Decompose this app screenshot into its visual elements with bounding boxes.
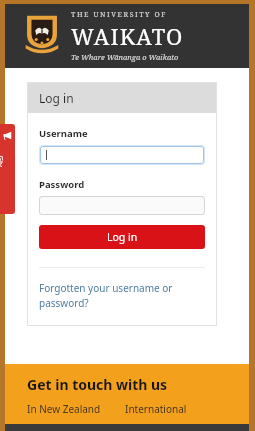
staticText: WAIKATO	[71, 21, 184, 51]
staticText: Log in	[107, 230, 138, 244]
button[interactable]: Log in	[39, 225, 205, 249]
button[interactable]: International	[125, 402, 187, 416]
button[interactable]: In New Zealand	[27, 402, 101, 416]
staticText: Password	[39, 178, 85, 191]
staticText: International	[125, 402, 187, 416]
staticText: In New Zealand	[27, 402, 101, 416]
staticText: Log in	[39, 90, 74, 106]
staticText: Get in touch with us	[27, 375, 168, 394]
staticText: Te Whare Wānanga o Waikato	[71, 52, 179, 62]
staticText: Give Feedback	[0, 155, 5, 170]
staticText: Forgotten your username or password?	[39, 281, 205, 310]
button[interactable]: Forgotten your username or password?	[39, 281, 205, 310]
button[interactable]: Give Feedback	[0, 124, 15, 214]
staticText: Username	[39, 127, 88, 140]
staticText: THE UNIVERSITY OF	[71, 10, 168, 20]
button[interactable]: Password input	[39, 196, 205, 215]
button[interactable]: Username input	[40, 146, 204, 164]
button[interactable]: University of Waikato home	[25, 10, 184, 62]
